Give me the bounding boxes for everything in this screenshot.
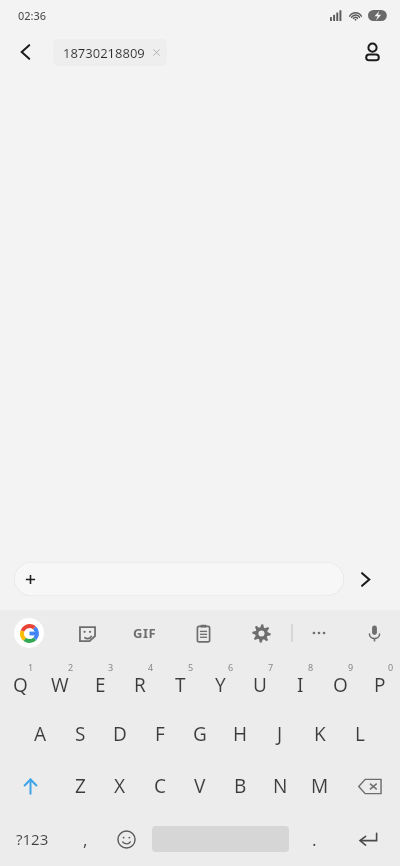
button[interactable]: S bbox=[60, 708, 100, 760]
button[interactable]: X bbox=[100, 760, 140, 812]
button[interactable]: R bbox=[120, 656, 160, 708]
staticText: K bbox=[314, 721, 326, 747]
button[interactable]: Enter bbox=[335, 812, 400, 866]
staticText: Q bbox=[13, 672, 28, 698]
staticText: M bbox=[311, 773, 329, 799]
button[interactable]: Clipboard bbox=[174, 610, 232, 656]
staticText: O bbox=[333, 672, 348, 698]
staticText: F bbox=[155, 721, 165, 747]
staticText: , bbox=[83, 828, 88, 851]
staticText: W bbox=[51, 672, 69, 698]
button[interactable]: Back bbox=[6, 32, 46, 72]
button[interactable]: Space bbox=[147, 812, 294, 866]
staticText: T bbox=[175, 672, 186, 698]
staticText: . bbox=[312, 828, 317, 851]
button[interactable]: M bbox=[300, 760, 340, 812]
staticText: J bbox=[277, 721, 283, 747]
staticText: P bbox=[374, 672, 386, 698]
button[interactable]: Shift bbox=[0, 760, 60, 812]
staticText: 8 bbox=[308, 661, 314, 673]
button[interactable]: E bbox=[80, 656, 120, 708]
staticText: 6 bbox=[228, 661, 234, 673]
button[interactable]: , bbox=[65, 812, 106, 866]
staticText: Z bbox=[75, 773, 86, 799]
button[interactable]: More options bbox=[290, 610, 348, 656]
button[interactable]: Google bbox=[0, 610, 58, 656]
button[interactable]: G bbox=[180, 708, 220, 760]
staticText: B bbox=[234, 773, 247, 799]
button[interactable]: I bbox=[280, 656, 320, 708]
staticText: 4 bbox=[148, 661, 154, 673]
button[interactable]: Send bbox=[344, 558, 386, 600]
staticText: S bbox=[75, 721, 86, 747]
staticText: 5 bbox=[188, 661, 194, 673]
button[interactable]: N bbox=[260, 760, 300, 812]
button[interactable]: V bbox=[180, 760, 220, 812]
staticText: ?123 bbox=[16, 829, 49, 849]
staticText: I bbox=[297, 672, 304, 698]
staticText: R bbox=[134, 672, 146, 698]
staticText: X bbox=[114, 773, 126, 799]
button[interactable]: Stickers bbox=[58, 610, 116, 656]
staticText: 7 bbox=[268, 661, 274, 673]
staticText: H bbox=[233, 721, 248, 747]
button[interactable]: F bbox=[140, 708, 180, 760]
button[interactable]: Q bbox=[0, 656, 40, 708]
button[interactable]: W bbox=[40, 656, 80, 708]
button[interactable]: Y bbox=[200, 656, 240, 708]
button[interactable]: GIF bbox=[116, 610, 174, 656]
button[interactable]: K bbox=[300, 708, 340, 760]
button[interactable]: P bbox=[360, 656, 400, 708]
button[interactable]: 18730218809 bbox=[53, 39, 167, 66]
button[interactable]: Z bbox=[60, 760, 100, 812]
button[interactable]: Voice input bbox=[348, 610, 400, 656]
staticText: 02:36 bbox=[18, 8, 47, 23]
button[interactable]: T bbox=[160, 656, 200, 708]
staticText: L bbox=[355, 721, 365, 747]
staticText: 9 bbox=[348, 661, 354, 673]
staticText: 1 bbox=[28, 661, 34, 673]
staticText: E bbox=[95, 672, 106, 698]
staticText: 2 bbox=[68, 661, 74, 673]
button[interactable]: Backspace bbox=[340, 760, 400, 812]
button[interactable]: Contact bbox=[352, 32, 392, 72]
button[interactable]: C bbox=[140, 760, 180, 812]
button[interactable]: D bbox=[100, 708, 140, 760]
button[interactable]: B bbox=[220, 760, 260, 812]
staticText: 0 bbox=[388, 661, 394, 673]
staticText: C bbox=[154, 773, 167, 799]
button[interactable]: O bbox=[320, 656, 360, 708]
staticText: U bbox=[253, 672, 267, 698]
button[interactable] bbox=[14, 562, 344, 596]
button[interactable]: Settings bbox=[232, 610, 290, 656]
button[interactable]: L bbox=[340, 708, 380, 760]
staticText: Y bbox=[215, 672, 226, 698]
staticText: D bbox=[113, 721, 127, 747]
staticText: G bbox=[193, 721, 207, 747]
button[interactable]: . bbox=[294, 812, 335, 866]
button[interactable]: H bbox=[220, 708, 260, 760]
button[interactable]: A bbox=[20, 708, 60, 760]
staticText: N bbox=[273, 773, 288, 799]
staticText: 3 bbox=[108, 661, 114, 673]
staticText: GIF bbox=[133, 624, 157, 642]
button[interactable]: U bbox=[240, 656, 280, 708]
staticText: A bbox=[34, 721, 47, 747]
button[interactable]: J bbox=[260, 708, 300, 760]
staticText: 18730218809 bbox=[63, 44, 145, 62]
button[interactable]: ?123 bbox=[0, 812, 65, 866]
button[interactable]: Emoji bbox=[106, 812, 147, 866]
staticText: V bbox=[194, 773, 206, 799]
